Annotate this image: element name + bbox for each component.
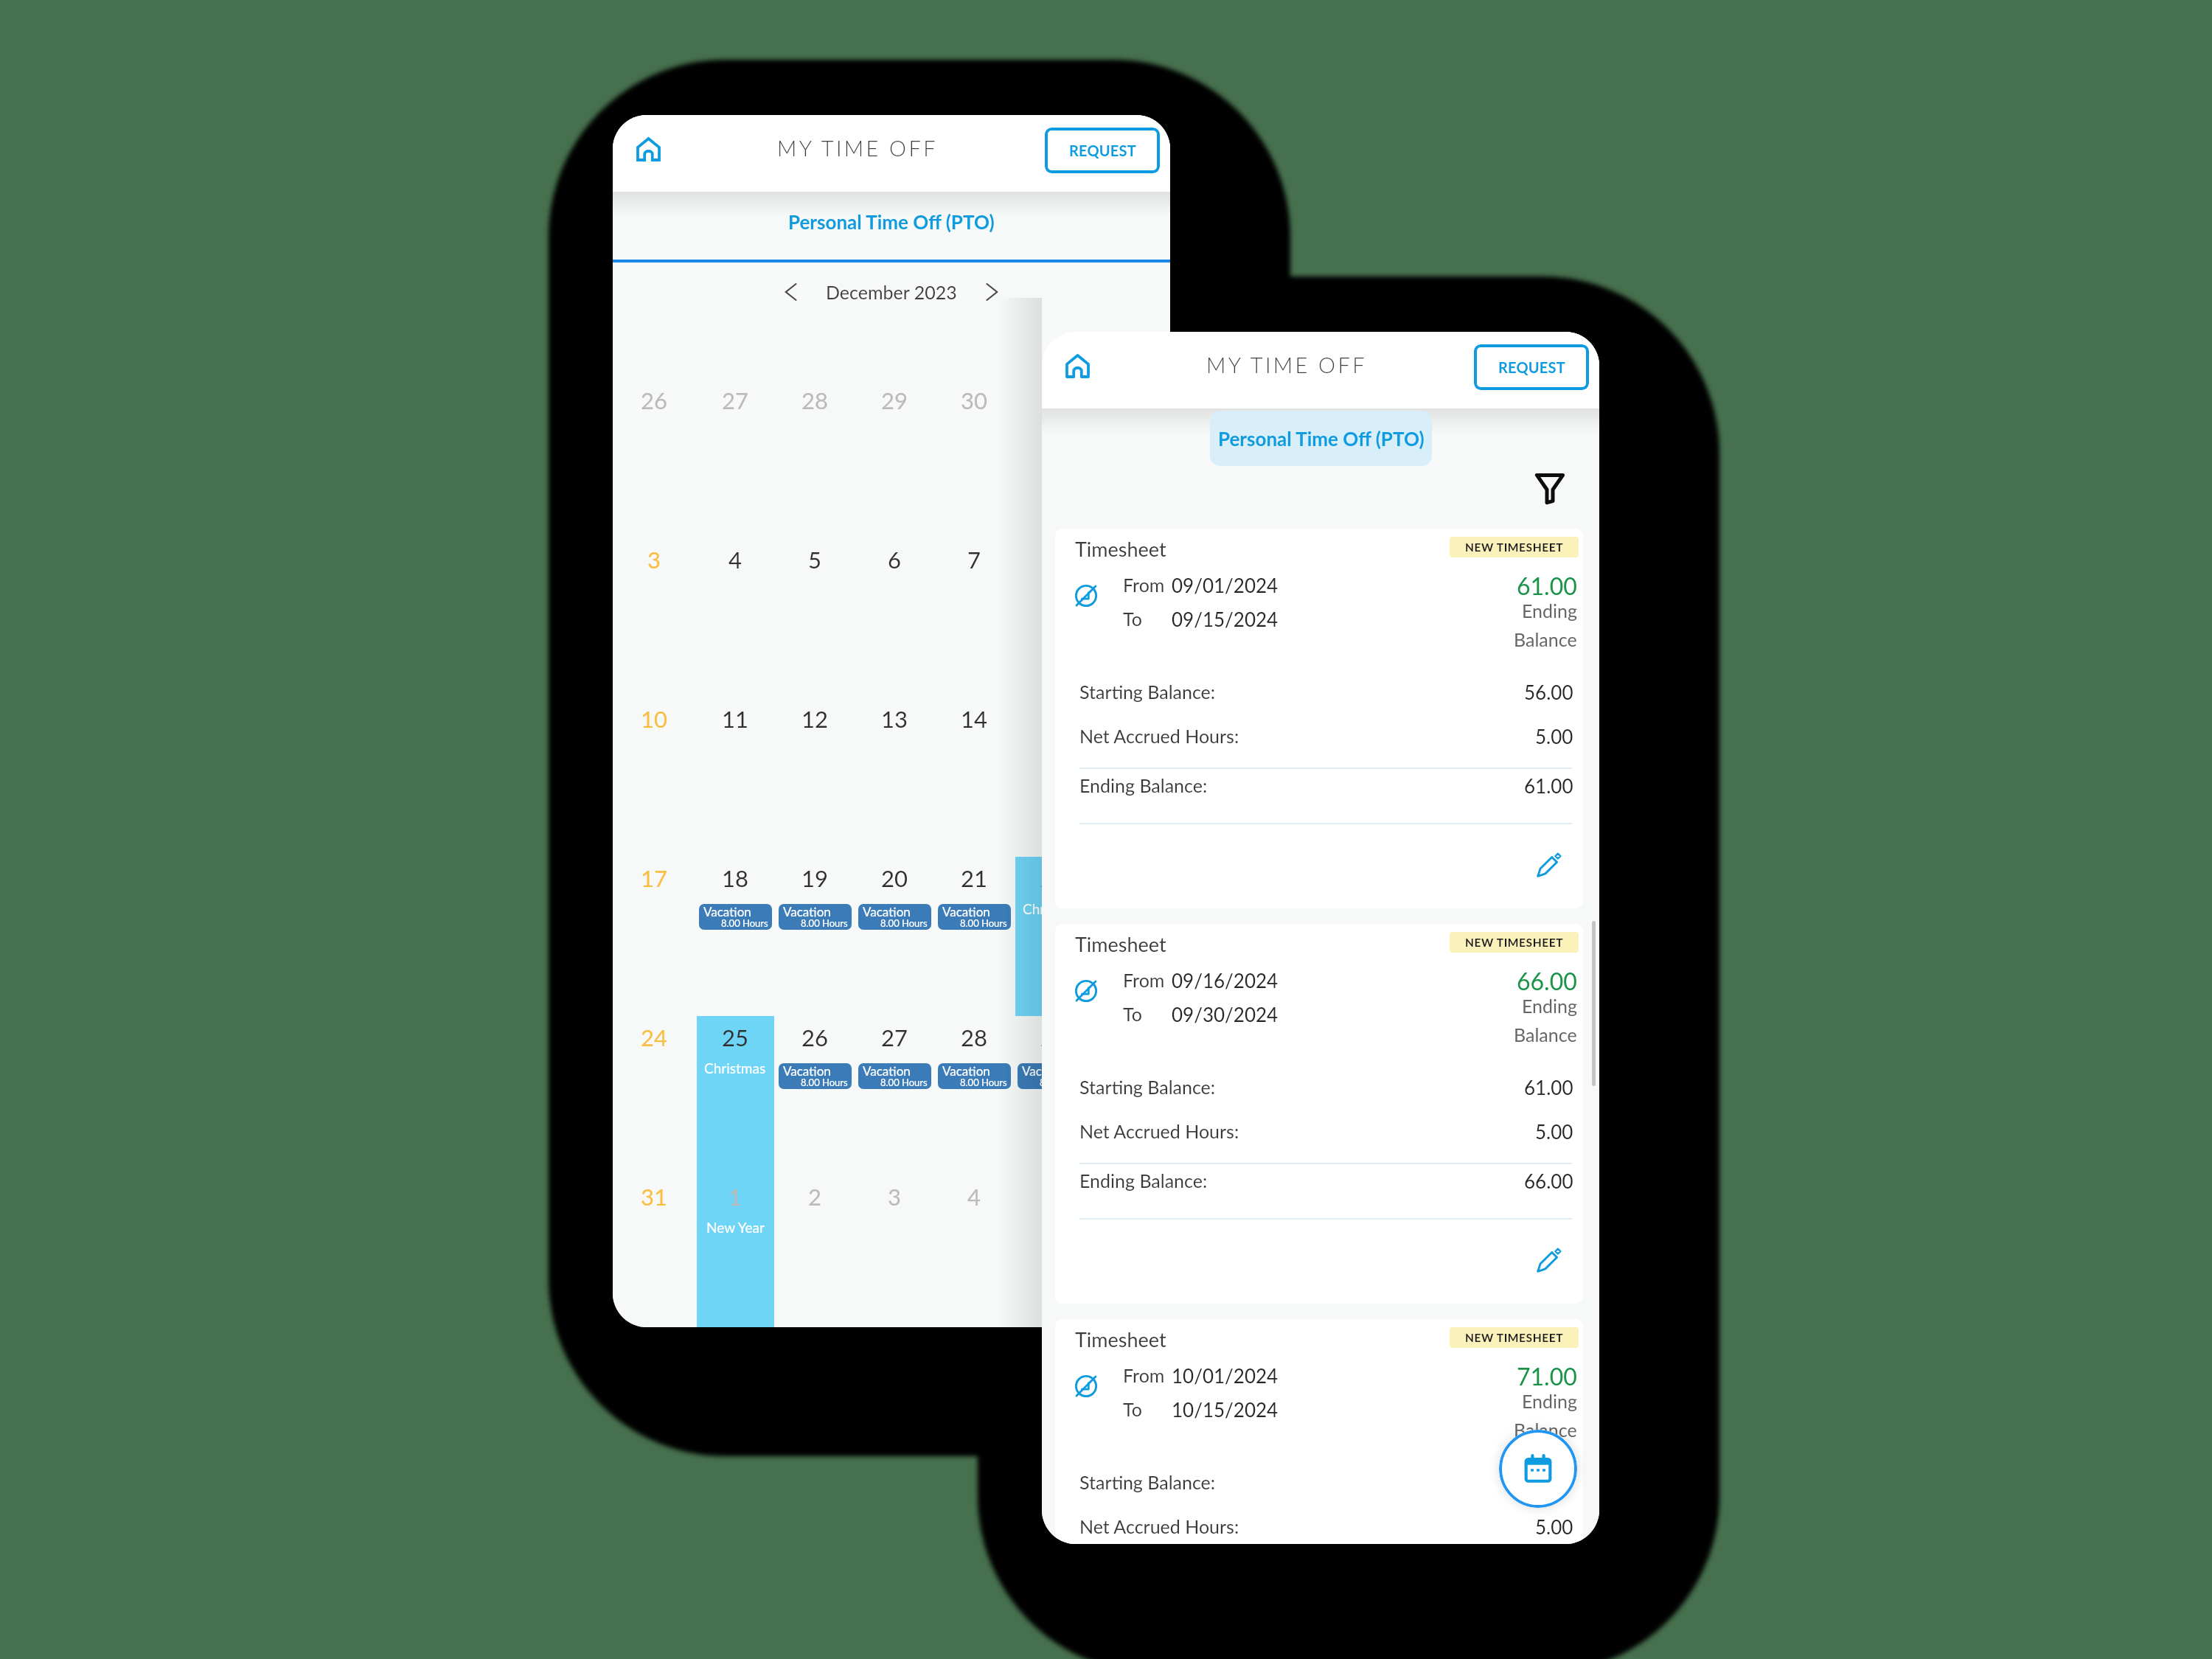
button[interactable]: December 14 — [934, 698, 1014, 857]
button[interactable]: December 4 — [934, 1175, 1014, 1327]
button[interactable]: Edit — [1528, 1240, 1569, 1281]
button[interactable]: Next month — [973, 274, 1010, 310]
staticText: Christmas — [704, 1060, 766, 1077]
button[interactable]: December 21 — [934, 857, 1014, 1016]
staticText: 12 — [801, 705, 828, 732]
button[interactable]: December 27 — [855, 1016, 934, 1175]
button[interactable]: Timesheet — [1055, 924, 1583, 1304]
staticText: MY TIME OFF — [777, 135, 938, 161]
staticText: 22 — [1040, 864, 1067, 891]
staticText: 9 — [1125, 546, 1138, 573]
staticText: Starting Balance: — [1079, 1471, 1216, 1493]
staticText: 8.00 Hours — [1040, 1077, 1087, 1088]
staticText: 09/30/2024 — [1172, 1003, 1279, 1026]
button[interactable]: December 8 — [1014, 538, 1093, 698]
staticText: 10 — [641, 705, 667, 732]
button[interactable]: December 28 — [775, 379, 855, 538]
button[interactable]: December 9 — [1093, 538, 1170, 698]
staticText: New Year — [706, 1219, 765, 1236]
button[interactable]: Home — [1054, 343, 1100, 389]
button[interactable]: December 29 — [1014, 1016, 1093, 1175]
staticText: 8.00 Hours — [880, 917, 928, 929]
staticText: Balance — [1514, 1419, 1577, 1441]
button[interactable]: December 16 — [1093, 698, 1170, 857]
button[interactable]: December 6 — [855, 538, 934, 698]
button[interactable]: Timesheet — [1055, 1319, 1583, 1544]
button[interactable]: December 22 — [1014, 857, 1093, 1016]
staticText: Net Accrued Hours: — [1079, 1120, 1239, 1142]
staticText: 09/16/2024 — [1172, 969, 1279, 992]
staticText: To — [1123, 1003, 1142, 1025]
staticText: 26 — [801, 1023, 828, 1051]
button[interactable]: Timesheet — [1055, 529, 1583, 908]
button[interactable]: December 25 — [695, 1016, 775, 1175]
staticText: 13 — [881, 705, 908, 732]
staticText: 8.00 Hours — [721, 917, 768, 929]
button[interactable]: December 1 — [695, 1175, 775, 1327]
staticText: 21 — [961, 864, 987, 891]
button[interactable]: Personal Time Off (PTO) — [1210, 411, 1432, 466]
button[interactable]: December 13 — [855, 698, 934, 857]
staticText: 25 — [722, 1023, 748, 1051]
staticText: 10/01/2024 — [1172, 1364, 1279, 1387]
button[interactable]: December 3 — [855, 1175, 934, 1327]
staticText: Net Accrued Hours: — [1079, 725, 1239, 747]
button[interactable]: Calendar — [1499, 1430, 1577, 1508]
staticText: 71.00 — [1517, 1362, 1577, 1390]
button[interactable]: December 23 — [1093, 857, 1170, 1016]
staticText: December 2023 — [826, 281, 957, 303]
button[interactable]: December 12 — [775, 698, 855, 857]
staticText: To — [1123, 608, 1142, 630]
staticText: MY TIME OFF — [1206, 352, 1367, 378]
staticText: 8 — [1047, 546, 1060, 573]
button[interactable]: Filter — [1527, 465, 1573, 511]
button[interactable]: Previous month — [773, 274, 810, 310]
staticText: 8.00 Hours — [960, 917, 1007, 929]
staticText: Christmas — [1023, 900, 1085, 917]
staticText: 6 — [1125, 1183, 1138, 1210]
staticText: 1 — [1047, 386, 1060, 414]
staticText: Vacation — [863, 904, 911, 919]
staticText: 2 — [808, 1183, 821, 1210]
button[interactable]: December 5 — [1014, 1175, 1093, 1327]
button[interactable]: December 29 — [855, 379, 934, 538]
staticText: Timesheet — [1075, 537, 1166, 560]
staticText: NEW TIMESHEET — [1465, 936, 1564, 950]
button[interactable]: REQUEST — [1045, 128, 1160, 173]
staticText: 4 — [728, 546, 742, 573]
button[interactable]: December 27 — [695, 379, 775, 538]
button[interactable]: December 4 — [695, 538, 775, 698]
button[interactable]: December 28 — [934, 1016, 1014, 1175]
button[interactable]: Home — [625, 126, 671, 172]
button[interactable]: December 19 — [775, 857, 855, 1016]
button[interactable]: December 15 — [1014, 698, 1093, 857]
staticText: Starting Balance: — [1079, 1076, 1216, 1098]
button[interactable]: December 1 — [1014, 379, 1093, 538]
button[interactable]: December 11 — [695, 698, 775, 857]
staticText: 4 — [967, 1183, 981, 1210]
button[interactable]: December 7 — [934, 538, 1014, 698]
button[interactable]: REQUEST — [1474, 344, 1589, 390]
button[interactable]: December 26 — [775, 1016, 855, 1175]
staticText: 20 — [881, 864, 908, 891]
staticText: Balance — [1514, 1023, 1577, 1046]
staticText: From — [1123, 574, 1165, 596]
staticText: 8.00 Hours — [880, 1077, 928, 1088]
staticText: 27 — [722, 386, 748, 414]
button[interactable]: December 30 — [1093, 1016, 1170, 1175]
staticText: 26 — [641, 386, 667, 414]
button[interactable]: December 6 — [1093, 1175, 1170, 1327]
staticText: 1 — [728, 1183, 742, 1210]
button[interactable]: December 2 — [775, 1175, 855, 1327]
button[interactable]: December 2 — [1093, 379, 1170, 538]
button[interactable]: December 30 — [934, 379, 1014, 538]
staticText: NEW TIMESHEET — [1465, 1331, 1564, 1345]
staticText: Timesheet — [1075, 932, 1166, 956]
button[interactable]: Edit — [1528, 845, 1569, 886]
staticText: 5.00 — [1535, 1120, 1573, 1143]
button[interactable]: December 20 — [855, 857, 934, 1016]
button[interactable]: December 18 — [695, 857, 775, 1016]
button[interactable]: December 5 — [775, 538, 855, 698]
staticText: 29 — [1040, 1023, 1067, 1051]
